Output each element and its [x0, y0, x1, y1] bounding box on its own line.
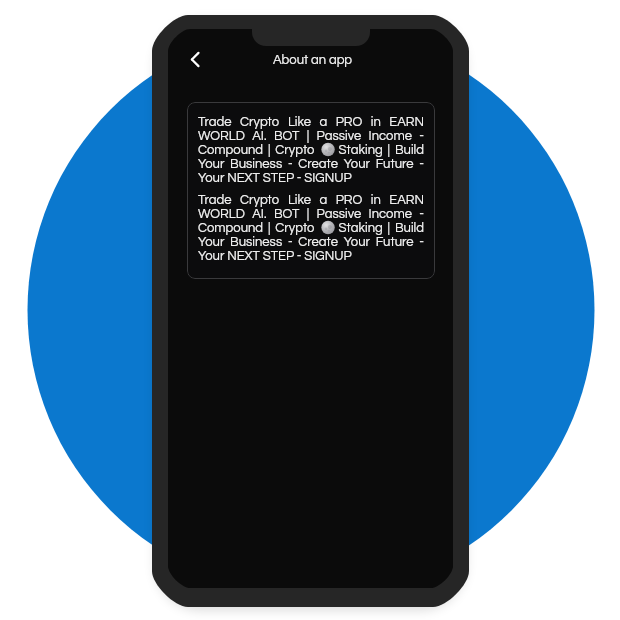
staticText: About an app [273, 53, 353, 66]
staticText: Trade Crypto Like a PRO in EARN WORLD AI… [198, 193, 424, 263]
button[interactable]: Back [179, 43, 211, 75]
staticText: Trade Crypto Like a PRO in EARN WORLD AI… [198, 115, 424, 185]
button[interactable]: Trade Crypto Like a PRO in EARN WORLD AI… [187, 102, 435, 279]
